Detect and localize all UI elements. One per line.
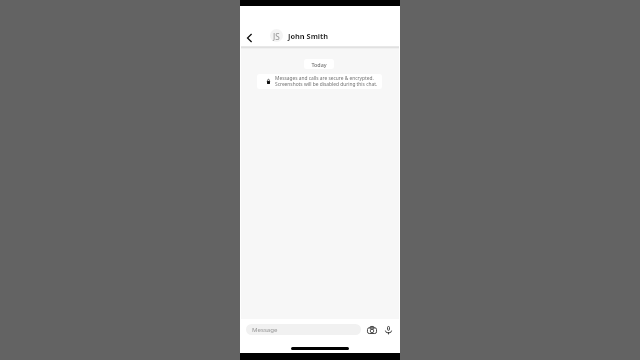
- button[interactable]: Back: [242, 31, 256, 45]
- staticText: Message: [252, 325, 278, 333]
- staticText: Messages and calls are secure & encrypte…: [275, 75, 374, 82]
- button[interactable]: Camera: [365, 323, 378, 336]
- button[interactable]: Voice message: [382, 323, 395, 336]
- staticText: Today: [311, 61, 327, 68]
- button[interactable]: Messages and calls are secure & encrypte…: [257, 74, 382, 89]
- staticText: John Smith: [288, 31, 329, 41]
- staticText: Screenshots will be disabled during this…: [275, 81, 378, 88]
- button[interactable]: Message: [246, 324, 361, 335]
- button[interactable]: John Smith: [288, 30, 329, 41]
- button[interactable]: Contact avatar: [270, 29, 283, 42]
- staticText: JS: [273, 31, 280, 42]
- button[interactable]: Today: [304, 59, 334, 69]
